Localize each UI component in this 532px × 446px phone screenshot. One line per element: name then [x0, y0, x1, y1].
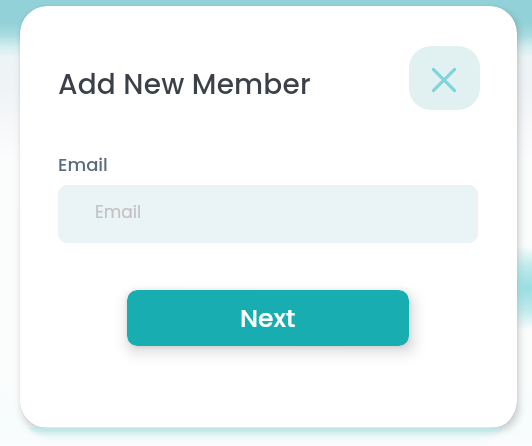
- staticText: Email: [95, 200, 142, 224]
- button[interactable]: Next: [127, 290, 409, 346]
- staticText: Email: [58, 152, 108, 177]
- button[interactable]: Close: [409, 46, 480, 110]
- staticText: Next: [240, 301, 296, 336]
- button[interactable]: Email: [58, 185, 478, 243]
- staticText: Add New Member: [58, 65, 311, 104]
